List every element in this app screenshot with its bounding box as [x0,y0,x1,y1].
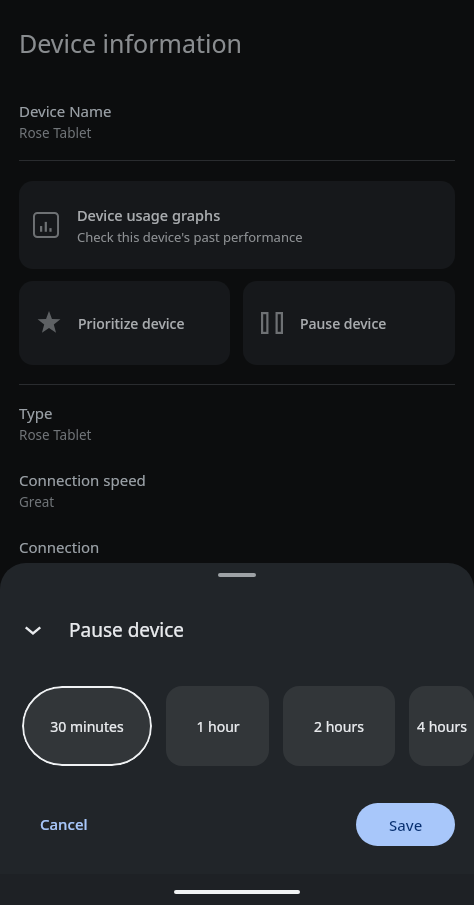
button[interactable]: Prioritize device [19,281,230,365]
staticText: Save [389,815,423,835]
staticText: Device information [19,26,243,60]
button[interactable]: 30 minutes [22,686,152,766]
staticText: Cancel [40,814,88,834]
staticText: 4 hours [417,717,467,736]
staticText: Pause device [69,617,185,643]
button[interactable]: 2 hours [283,686,395,766]
staticText: Connection speed [19,470,146,490]
button[interactable]: Device usage graphs [19,181,455,269]
button[interactable]: Pause device [243,281,455,365]
staticText: 1 hour [196,717,240,736]
staticText: Rose Tablet [19,426,92,444]
button[interactable]: Cancel [28,806,100,842]
button[interactable]: Save [356,803,455,846]
staticText: 2 hours [314,717,364,736]
staticText: Type [19,403,53,423]
staticText: Check this device's past performance [77,228,303,246]
staticText: Device usage graphs [77,205,221,225]
staticText: Pause device [300,314,387,333]
staticText: Prioritize device [78,314,185,333]
staticText: 30 minutes [50,717,124,736]
staticText: Rose Tablet [19,124,92,142]
button[interactable]: 4 hours [409,686,474,766]
staticText: Great [19,493,55,511]
button[interactable]: Collapse [14,611,52,649]
staticText: Connection [19,537,100,557]
button[interactable]: 1 hour [166,686,269,766]
staticText: Device Name [19,101,112,121]
